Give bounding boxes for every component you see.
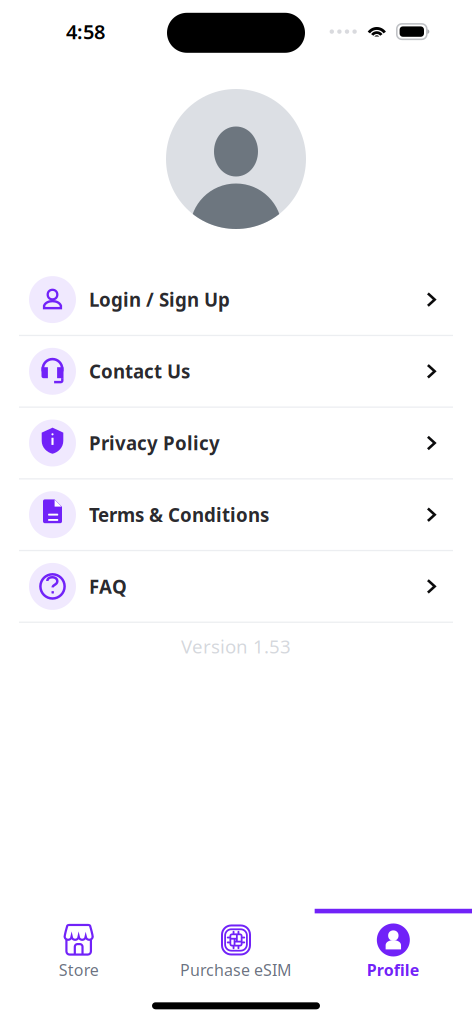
button[interactable]: Terms & Conditions bbox=[0, 479, 472, 550]
button[interactable]: Login / Sign Up bbox=[0, 264, 472, 335]
staticText: 4:58 bbox=[66, 18, 105, 45]
staticText: Login / Sign Up bbox=[89, 287, 230, 312]
staticText: Contact Us bbox=[89, 359, 190, 384]
button[interactable]: Purchase eSIM bbox=[157, 910, 315, 988]
staticText: Privacy Policy bbox=[89, 431, 220, 455]
button[interactable]: FAQ bbox=[0, 551, 472, 622]
staticText: Purchase eSIM bbox=[180, 959, 292, 980]
staticText: FAQ bbox=[89, 574, 127, 599]
button[interactable]: Profile bbox=[315, 910, 472, 988]
button[interactable]: Contact Us bbox=[0, 336, 472, 406]
staticText: Version 1.53 bbox=[181, 634, 291, 659]
button[interactable]: Privacy Policy bbox=[0, 408, 472, 478]
staticText: Store bbox=[59, 959, 99, 980]
button[interactable]: Store bbox=[0, 910, 157, 988]
staticText: Terms & Conditions bbox=[89, 502, 269, 527]
staticText: Profile bbox=[367, 959, 420, 980]
